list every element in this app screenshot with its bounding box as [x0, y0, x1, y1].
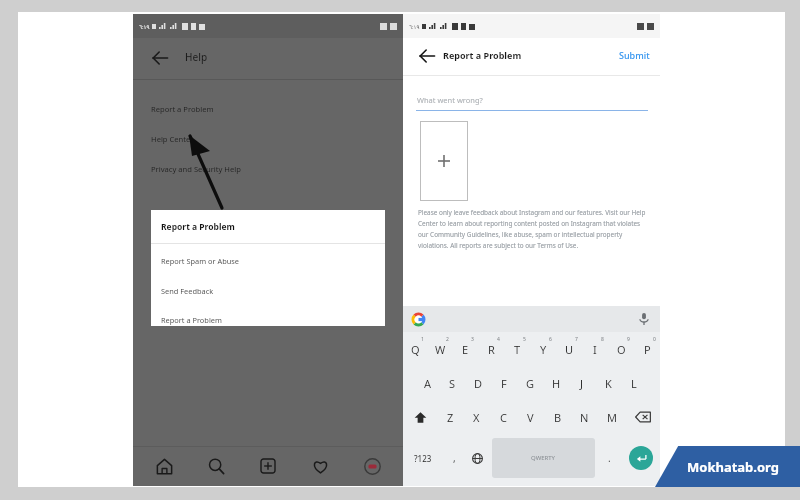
- staticText: B: [554, 410, 562, 425]
- staticText: N: [580, 410, 589, 425]
- staticText: What went wrong?: [417, 95, 483, 105]
- staticText: V: [527, 410, 534, 425]
- button[interactable]: V: [517, 400, 544, 434]
- staticText: 1: [421, 336, 424, 343]
- staticText: K: [605, 376, 612, 391]
- button[interactable]: Send Feedback: [151, 280, 385, 302]
- staticText: W: [435, 342, 446, 357]
- button[interactable]: R: [478, 332, 504, 366]
- button[interactable]: B: [544, 400, 571, 434]
- button[interactable]: .: [598, 438, 621, 478]
- button[interactable]: G: [517, 366, 543, 400]
- staticText: O: [617, 342, 626, 357]
- staticText: P: [644, 342, 651, 357]
- button[interactable]: S: [440, 366, 465, 400]
- button[interactable]: L: [621, 366, 647, 400]
- staticText: X: [473, 410, 480, 425]
- button[interactable]: Back: [411, 45, 443, 67]
- staticText: 3: [471, 336, 474, 343]
- staticText: G: [526, 376, 535, 391]
- button[interactable]: Activity: [303, 449, 337, 483]
- button[interactable]: Add photo: [420, 121, 468, 201]
- staticText: ,: [453, 451, 456, 465]
- button[interactable]: M: [598, 400, 625, 434]
- staticText: Z: [447, 410, 454, 425]
- staticText: U: [565, 342, 574, 357]
- button[interactable]: Profile: [355, 449, 389, 483]
- staticText: I: [593, 342, 597, 357]
- staticText: Privacy and Security Help: [151, 164, 241, 174]
- staticText: Submit: [619, 49, 650, 61]
- button[interactable]: A: [415, 366, 440, 400]
- staticText: Y: [540, 342, 547, 357]
- staticText: Help Center: [151, 134, 194, 144]
- button[interactable]: Add post: [251, 449, 285, 483]
- button[interactable]: T: [504, 332, 530, 366]
- button[interactable]: Report a Problem: [133, 96, 403, 122]
- staticText: 6: [549, 336, 552, 343]
- staticText: Report a Problem: [161, 315, 222, 325]
- staticText: T: [514, 342, 521, 357]
- button[interactable]: O: [608, 332, 634, 366]
- button[interactable]: C: [490, 400, 517, 434]
- staticText: Report a Problem: [161, 221, 235, 233]
- button[interactable]: Google: [411, 312, 425, 326]
- button[interactable]: Privacy and Security Help: [133, 156, 403, 182]
- button[interactable]: N: [571, 400, 598, 434]
- button[interactable]: Change language: [466, 438, 489, 478]
- button[interactable]: Shift: [403, 400, 437, 434]
- staticText: L: [631, 376, 637, 391]
- button[interactable]: Voice input: [636, 311, 652, 327]
- staticText: A: [424, 376, 432, 391]
- button[interactable]: Y: [530, 332, 556, 366]
- button[interactable]: ?123: [403, 438, 443, 478]
- button[interactable]: W: [428, 332, 453, 366]
- button[interactable]: Enter: [629, 446, 653, 470]
- staticText: Report a Problem: [151, 104, 214, 114]
- button[interactable]: Submit: [613, 44, 655, 66]
- staticText: 4: [497, 336, 500, 343]
- button[interactable]: Backspace: [625, 400, 660, 434]
- button[interactable]: P: [634, 332, 660, 366]
- button[interactable]: E: [453, 332, 478, 366]
- staticText: J: [580, 376, 584, 391]
- staticText: Help: [185, 50, 208, 64]
- staticText: C: [500, 410, 507, 425]
- staticText: 2: [446, 336, 449, 343]
- button[interactable]: F: [491, 366, 517, 400]
- button[interactable]: H: [543, 366, 569, 400]
- staticText: 7: [575, 336, 578, 343]
- button[interactable]: QWERTY: [492, 438, 595, 478]
- button[interactable]: U: [556, 332, 582, 366]
- staticText: Report Spam or Abuse: [161, 256, 239, 266]
- staticText: 8: [601, 336, 604, 343]
- staticText: H: [552, 376, 561, 391]
- button[interactable]: Q: [403, 332, 428, 366]
- button[interactable]: I: [582, 332, 608, 366]
- staticText: F: [501, 376, 507, 391]
- staticText: ٦:١٩: [139, 23, 150, 30]
- button[interactable]: K: [595, 366, 621, 400]
- button[interactable]: Help Center: [133, 126, 403, 152]
- button[interactable]: Back: [143, 46, 177, 70]
- staticText: QWERTY: [531, 454, 556, 462]
- staticText: 5: [523, 336, 526, 343]
- staticText: E: [462, 342, 469, 357]
- button[interactable]: X: [463, 400, 490, 434]
- button[interactable]: Search: [199, 449, 233, 483]
- button[interactable]: J: [569, 366, 595, 400]
- staticText: M: [607, 410, 617, 425]
- button[interactable]: Report a Problem: [151, 309, 385, 331]
- staticText: 0: [653, 336, 656, 343]
- staticText: D: [474, 376, 483, 391]
- staticText: R: [488, 342, 495, 357]
- staticText: Report a Problem: [443, 49, 522, 61]
- button[interactable]: Z: [437, 400, 463, 434]
- button[interactable]: D: [465, 366, 491, 400]
- button[interactable]: Home: [147, 449, 181, 483]
- staticText: 9: [627, 336, 630, 343]
- staticText: S: [449, 376, 456, 391]
- button[interactable]: ,: [443, 438, 466, 478]
- staticText: Q: [411, 342, 420, 357]
- button[interactable]: Report Spam or Abuse: [151, 250, 385, 272]
